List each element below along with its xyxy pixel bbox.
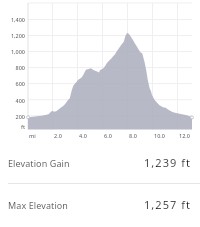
staticText: ft [0,123,25,130]
staticText: 600 [0,80,25,87]
staticText: 400 [0,97,25,104]
staticText: 200 [0,113,25,120]
staticText: 1,200 [0,32,25,39]
button[interactable]: Elevation Gain [0,142,200,183]
staticText: mi [29,132,36,139]
staticText: 1,400 [0,16,25,23]
staticText: 4.0 [79,132,87,139]
staticText: 10.0 [154,132,165,139]
staticText: 800 [0,64,25,71]
staticText: 1,257 ft [144,197,192,212]
staticText: 1,239 ft [144,155,192,170]
staticText: 1,000 [0,48,25,55]
staticText: 8.0 [129,132,137,139]
staticText: Max Elevation [8,199,69,211]
button[interactable]: Max Elevation [0,184,200,225]
staticText: 2.0 [54,132,62,139]
staticText: 6.0 [104,132,112,139]
staticText: Elevation Gain [8,157,70,169]
staticText: 12.0 [179,132,190,139]
